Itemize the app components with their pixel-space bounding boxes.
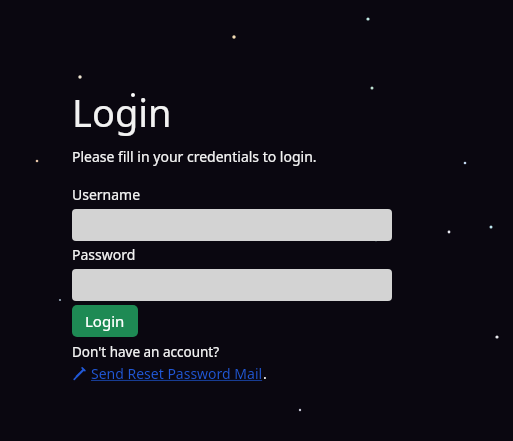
button[interactable]: Password field — [72, 269, 392, 301]
staticText: Login — [85, 311, 125, 331]
button[interactable]: Send Reset Password Mail — [72, 364, 263, 383]
button[interactable]: Username field — [72, 209, 392, 241]
staticText: Don't have an account? — [72, 343, 220, 361]
staticText: Username — [72, 185, 141, 204]
staticText: Please fill in your credentials to login… — [72, 147, 317, 166]
staticText: Send Reset Password Mail — [91, 364, 263, 383]
other: Send Reset Password Mail — [72, 367, 86, 381]
staticText: Login — [72, 86, 172, 138]
staticText: Password — [72, 245, 136, 264]
button[interactable]: Login — [72, 305, 138, 337]
staticText: . — [263, 364, 267, 383]
